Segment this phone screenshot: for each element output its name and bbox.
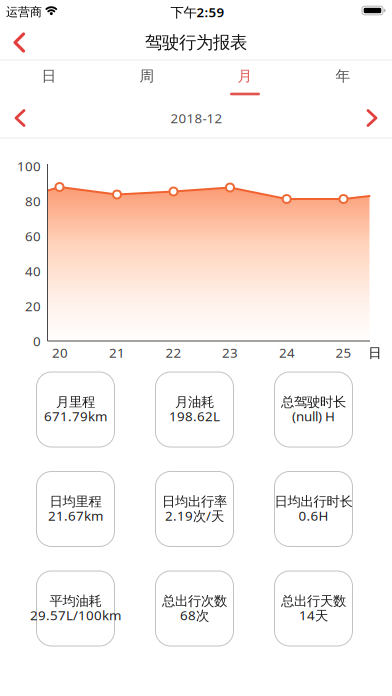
- staticText: 周: [139, 67, 154, 85]
- staticText: 总驾驶时长: [281, 394, 346, 410]
- staticText: 运营商: [6, 5, 42, 19]
- staticText: 22: [165, 344, 181, 361]
- staticText: 198.62L: [169, 407, 220, 425]
- staticText: 80: [25, 192, 41, 210]
- staticText: 平均油耗: [49, 593, 101, 609]
- button[interactable]: 上个月: [11, 108, 28, 128]
- staticText: 日均出行率: [162, 493, 227, 510]
- staticText: (null) H: [292, 407, 335, 425]
- button[interactable]: 周: [98, 60, 196, 97]
- staticText: 月里程: [56, 394, 95, 410]
- button[interactable]: 返回: [9, 31, 31, 54]
- staticText: 总出行次数: [162, 593, 227, 609]
- staticText: 日: [368, 345, 381, 361]
- staticText: 20: [25, 297, 41, 315]
- staticText: 驾驶行为报表: [145, 32, 247, 53]
- staticText: 40: [25, 262, 41, 280]
- staticText: 68次: [180, 606, 209, 624]
- button[interactable]: 下个月: [363, 108, 380, 128]
- staticText: 100: [17, 157, 41, 175]
- button[interactable]: 日: [0, 60, 98, 97]
- staticText: 14天: [299, 606, 328, 624]
- staticText: 29.57L/100km: [30, 606, 121, 624]
- staticText: 年: [335, 67, 350, 85]
- button[interactable]: 年: [294, 60, 392, 97]
- staticText: 21: [109, 344, 125, 361]
- staticText: 2018-12: [170, 109, 222, 127]
- staticText: 日: [41, 67, 56, 85]
- button[interactable]: 月: [196, 60, 294, 97]
- staticText: 671.79km: [44, 407, 107, 425]
- staticText: 20: [52, 344, 68, 361]
- staticText: 下午2:59: [170, 3, 224, 21]
- staticText: 月: [237, 67, 252, 85]
- staticText: 总出行天数: [281, 593, 346, 609]
- staticText: 23: [222, 344, 238, 361]
- staticText: 0.6H: [298, 507, 328, 524]
- staticText: 日均出行时长: [274, 493, 352, 510]
- staticText: 21.67km: [48, 507, 103, 524]
- staticText: 25: [335, 344, 351, 361]
- staticText: 60: [25, 227, 41, 245]
- staticText: 0: [33, 332, 41, 350]
- staticText: 24: [279, 344, 295, 361]
- staticText: 日均里程: [49, 493, 101, 510]
- staticText: 2.19次/天: [165, 507, 224, 524]
- staticText: 月油耗: [175, 394, 214, 410]
